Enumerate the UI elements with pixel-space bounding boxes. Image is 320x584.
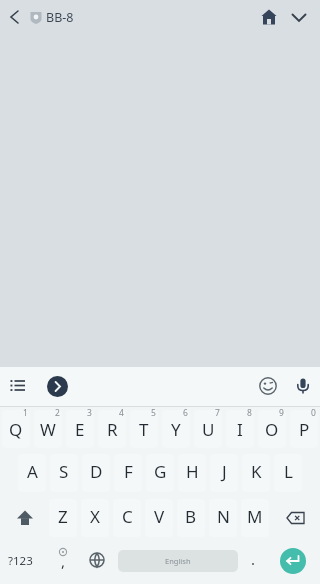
button[interactable] bbox=[9, 499, 41, 537]
staticText: S bbox=[59, 460, 69, 483]
staticText: , bbox=[61, 551, 66, 571]
staticText: ?123 bbox=[8, 553, 33, 569]
button[interactable] bbox=[292, 375, 314, 397]
staticText: 9 bbox=[279, 407, 284, 419]
staticText: A bbox=[27, 460, 38, 483]
button[interactable] bbox=[2, 410, 30, 448]
staticText: 2 bbox=[55, 407, 60, 419]
staticText: K bbox=[251, 460, 262, 483]
button[interactable] bbox=[194, 410, 222, 448]
button[interactable] bbox=[210, 454, 238, 492]
staticText: E bbox=[75, 418, 85, 441]
staticText: G bbox=[154, 460, 167, 483]
button[interactable] bbox=[178, 454, 206, 492]
button[interactable] bbox=[288, 6, 310, 28]
staticText: D bbox=[90, 460, 103, 483]
button[interactable] bbox=[34, 410, 62, 448]
button[interactable] bbox=[98, 410, 126, 448]
button[interactable] bbox=[145, 499, 173, 537]
button[interactable] bbox=[226, 410, 254, 448]
staticText: W bbox=[40, 418, 56, 441]
staticText: U bbox=[202, 418, 215, 441]
staticText: T bbox=[139, 418, 149, 441]
button[interactable]: . bbox=[240, 543, 266, 575]
staticText: V bbox=[154, 505, 165, 528]
staticText: 5 bbox=[151, 407, 156, 419]
staticText: English bbox=[165, 556, 191, 566]
button[interactable] bbox=[130, 410, 158, 448]
button[interactable] bbox=[18, 454, 46, 492]
button[interactable] bbox=[2, 6, 24, 28]
staticText: B bbox=[185, 505, 197, 528]
staticText: J bbox=[222, 460, 227, 483]
button[interactable] bbox=[114, 454, 142, 492]
staticText: 0 bbox=[311, 407, 316, 419]
staticText: X bbox=[90, 505, 100, 528]
staticText: 6 bbox=[183, 407, 188, 419]
button[interactable] bbox=[50, 454, 78, 492]
staticText: Q bbox=[9, 418, 23, 441]
button[interactable] bbox=[81, 499, 109, 537]
button[interactable] bbox=[242, 454, 270, 492]
button[interactable] bbox=[280, 499, 312, 537]
button[interactable] bbox=[258, 410, 286, 448]
staticText: 7 bbox=[215, 407, 220, 419]
button[interactable] bbox=[113, 499, 141, 537]
staticText: N bbox=[217, 505, 230, 528]
staticText: 3 bbox=[87, 407, 92, 419]
staticText: Y bbox=[171, 418, 181, 441]
button[interactable] bbox=[280, 548, 306, 574]
button[interactable] bbox=[66, 410, 94, 448]
staticText: O bbox=[265, 418, 279, 441]
staticText: 8 bbox=[247, 407, 252, 419]
button[interactable] bbox=[177, 499, 205, 537]
staticText: BB-8 bbox=[46, 9, 74, 26]
button[interactable]: English bbox=[118, 550, 238, 572]
button[interactable] bbox=[257, 375, 279, 397]
staticText: F bbox=[124, 460, 133, 483]
staticText: L bbox=[284, 460, 293, 483]
staticText: H bbox=[186, 460, 199, 483]
staticText: C bbox=[122, 505, 133, 528]
staticText: R bbox=[107, 418, 118, 441]
staticText: 1 bbox=[23, 407, 28, 419]
button[interactable] bbox=[258, 6, 280, 28]
button[interactable] bbox=[146, 454, 174, 492]
button[interactable] bbox=[83, 545, 111, 577]
button[interactable] bbox=[241, 499, 269, 537]
staticText: Z bbox=[58, 505, 68, 528]
button[interactable] bbox=[274, 454, 302, 492]
staticText: P bbox=[299, 418, 310, 441]
button[interactable]: , bbox=[47, 541, 79, 580]
button[interactable] bbox=[209, 499, 237, 537]
button[interactable] bbox=[162, 410, 190, 448]
button[interactable] bbox=[6, 374, 30, 398]
staticText: 4 bbox=[119, 407, 124, 419]
staticText: M bbox=[247, 505, 263, 528]
button[interactable] bbox=[49, 499, 77, 537]
staticText: I bbox=[237, 418, 243, 441]
button[interactable]: ?123 bbox=[2, 543, 38, 579]
button[interactable] bbox=[47, 376, 68, 397]
staticText: . bbox=[251, 549, 256, 569]
button[interactable] bbox=[82, 454, 110, 492]
button[interactable] bbox=[290, 410, 318, 448]
